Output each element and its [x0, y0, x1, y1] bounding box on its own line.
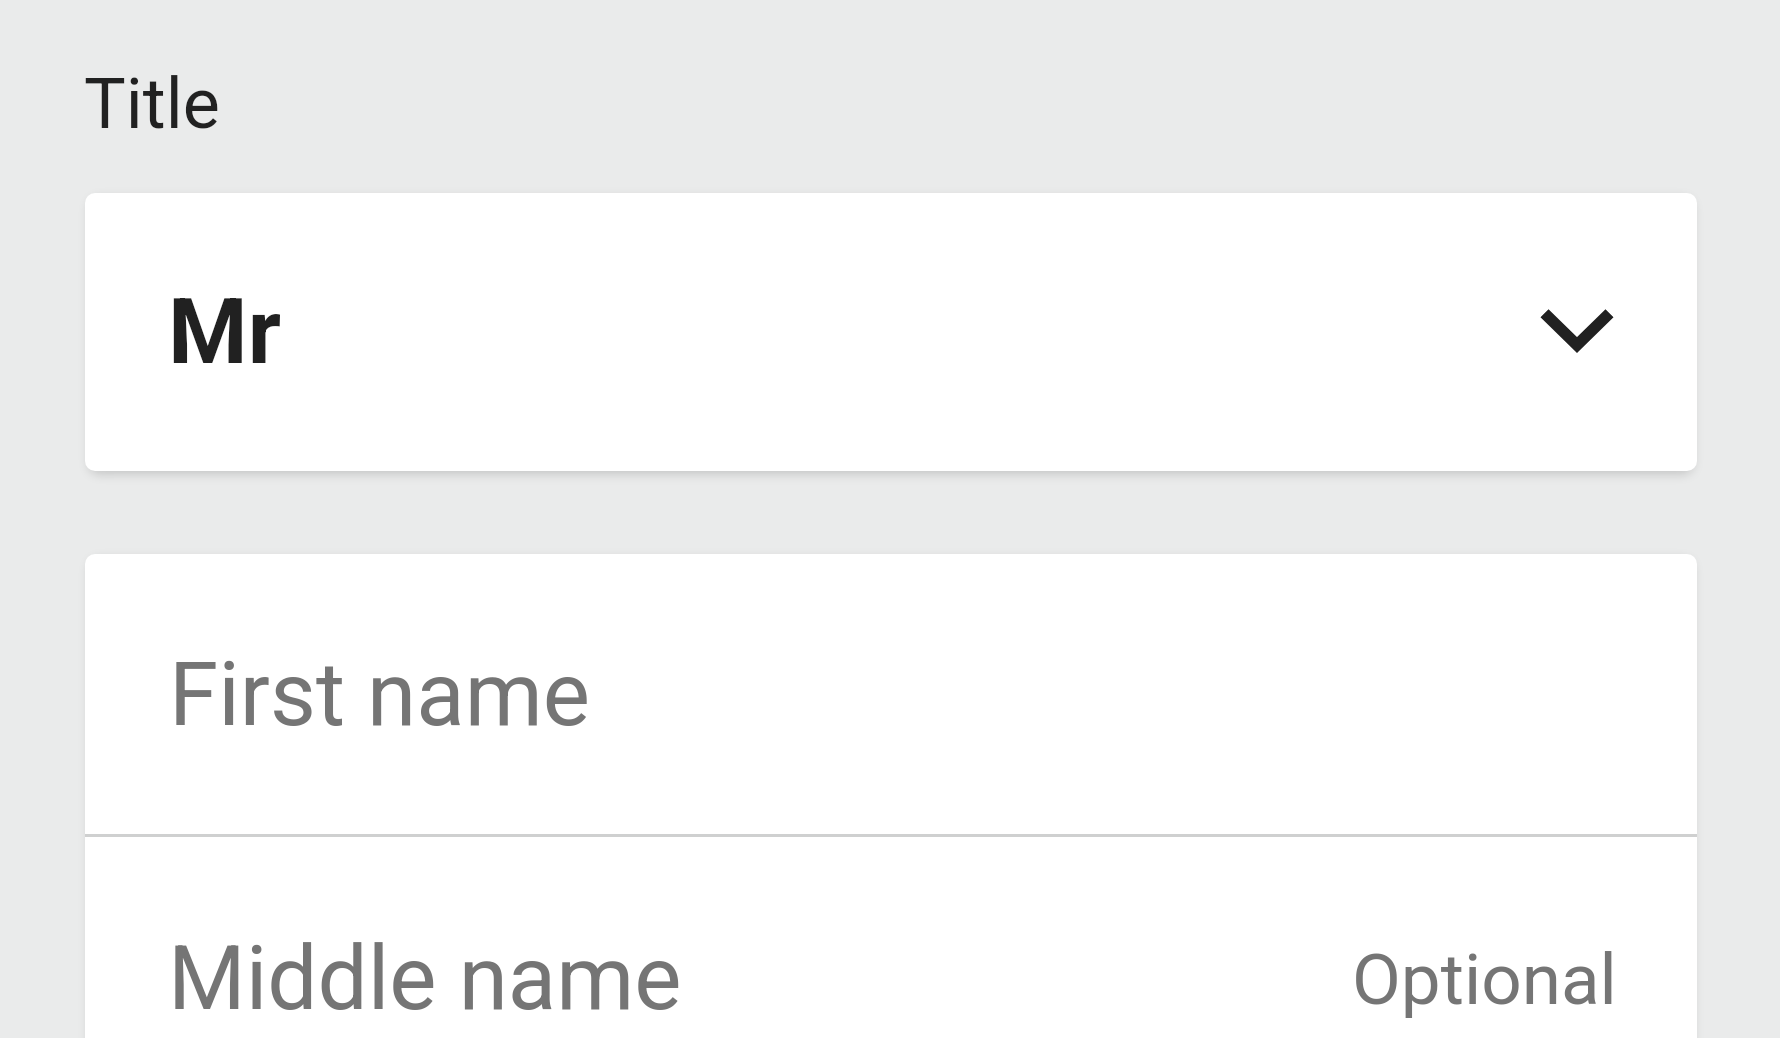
staticText: Mr: [168, 279, 281, 386]
button[interactable]: Mr: [85, 193, 1697, 471]
staticText: First name: [169, 642, 590, 746]
staticText: Optional: [1352, 938, 1617, 1021]
button[interactable]: Middle name: [85, 837, 1697, 1038]
other: Open title options: [1517, 272, 1637, 392]
staticText: Middle name: [168, 926, 682, 1030]
button[interactable]: First name: [85, 554, 1697, 834]
staticText: Title: [84, 63, 220, 145]
